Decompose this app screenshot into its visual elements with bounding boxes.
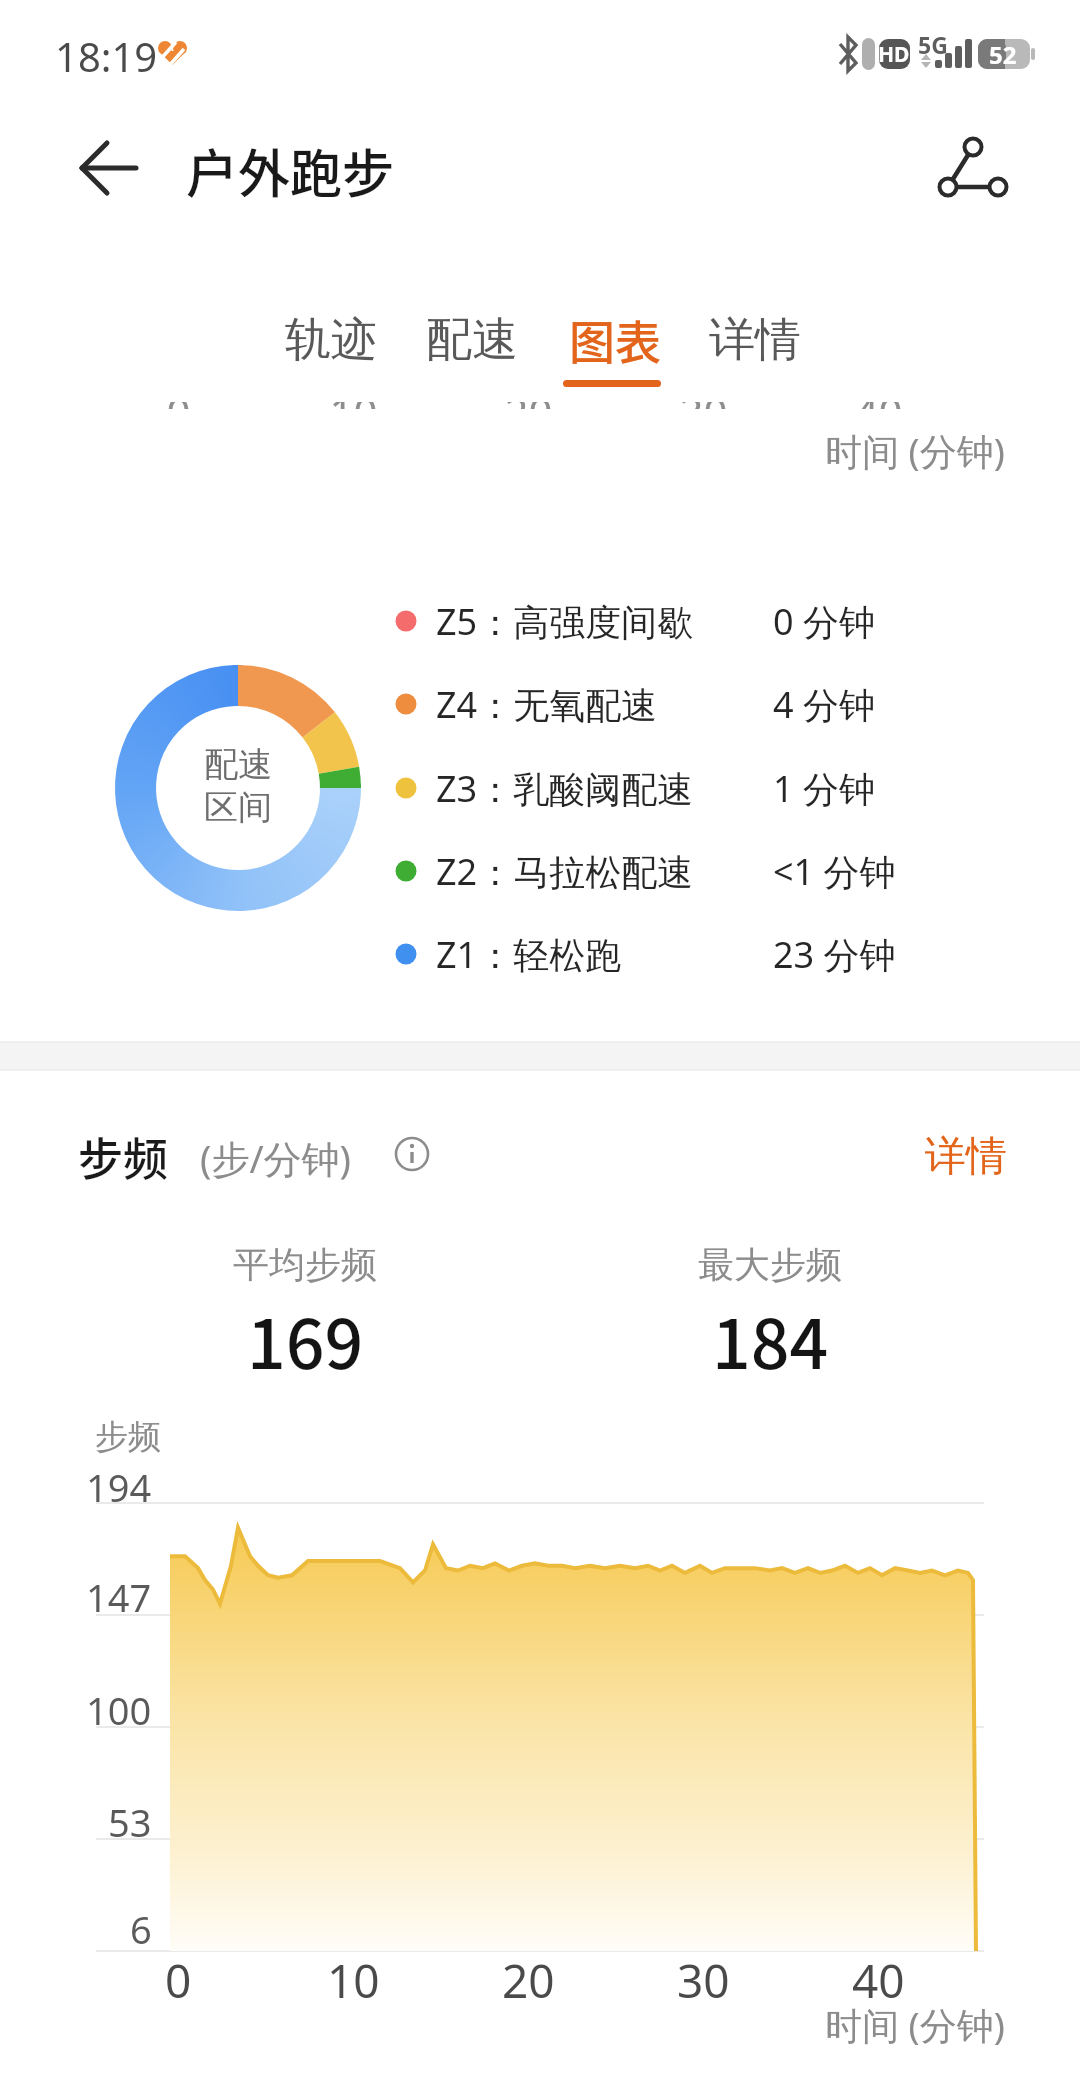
staticText: 194 xyxy=(86,1461,152,1513)
staticText: Z4：无氧配速 xyxy=(436,680,658,729)
staticText: 6 xyxy=(130,1903,152,1955)
staticText: 100 xyxy=(86,1684,152,1736)
button[interactable]: 详情 xyxy=(887,1118,1007,1195)
staticText: 0 xyxy=(166,402,191,409)
staticText: 1 分钟 xyxy=(773,764,875,813)
staticText: 23 分钟 xyxy=(773,930,896,979)
staticText: 区间 xyxy=(204,786,272,829)
button[interactable]: 详情 xyxy=(685,296,825,383)
button[interactable]: 配速 xyxy=(402,296,542,383)
staticText: 10 xyxy=(329,402,378,409)
staticText: 18:19 xyxy=(55,29,158,83)
staticText: Z1：轻松跑 xyxy=(436,930,622,979)
staticText: 步频 xyxy=(78,1124,169,1189)
staticText: Z2：马拉松配速 xyxy=(436,847,694,896)
staticText: 53 xyxy=(108,1796,152,1848)
staticText: 20 xyxy=(504,402,553,409)
staticText: 10 xyxy=(327,1949,380,2012)
staticText: 平均步频 xyxy=(233,1242,377,1287)
staticText: 40 xyxy=(852,1949,905,2012)
staticText: 0 分钟 xyxy=(773,597,875,646)
staticText: 20 xyxy=(502,1949,555,2012)
staticText: 详情 xyxy=(925,1131,1007,1183)
staticText: <1 分钟 xyxy=(773,847,896,896)
button[interactable] xyxy=(920,125,1025,215)
staticText: 图表 xyxy=(569,306,661,373)
staticText: Z5：高强度间歇 xyxy=(436,597,694,646)
staticText: 配速 xyxy=(426,311,518,369)
staticText: 步频 xyxy=(95,1416,161,1458)
staticText: 52 xyxy=(989,38,1017,71)
staticText: 户外跑步 xyxy=(186,133,395,208)
button[interactable]: 轨迹 xyxy=(261,296,401,383)
staticText: 30 xyxy=(677,1949,730,2012)
staticText: 4 分钟 xyxy=(773,680,875,729)
staticText: 147 xyxy=(86,1571,152,1623)
button[interactable]: 图表 xyxy=(545,296,685,383)
button[interactable] xyxy=(60,130,160,206)
staticText: 最大步频 xyxy=(698,1242,842,1287)
staticText: 配速 xyxy=(204,743,272,786)
staticText: 详情 xyxy=(709,311,801,369)
staticText: 时间 (分钟) xyxy=(825,425,1005,476)
staticText: (步/分钟) xyxy=(200,1132,351,1184)
staticText: 40 xyxy=(854,402,903,409)
button[interactable] xyxy=(390,1132,434,1176)
staticText: 时间 (分钟) xyxy=(825,1999,1005,2050)
staticText: 184 xyxy=(712,1290,829,1388)
staticText: 169 xyxy=(247,1290,364,1388)
staticText: Z3：乳酸阈配速 xyxy=(436,764,694,813)
staticText: 0 xyxy=(165,1949,192,2012)
staticText: 30 xyxy=(679,402,728,409)
staticText: 5G xyxy=(918,29,948,60)
staticText: 轨迹 xyxy=(285,311,377,369)
staticText: HD xyxy=(878,40,910,69)
